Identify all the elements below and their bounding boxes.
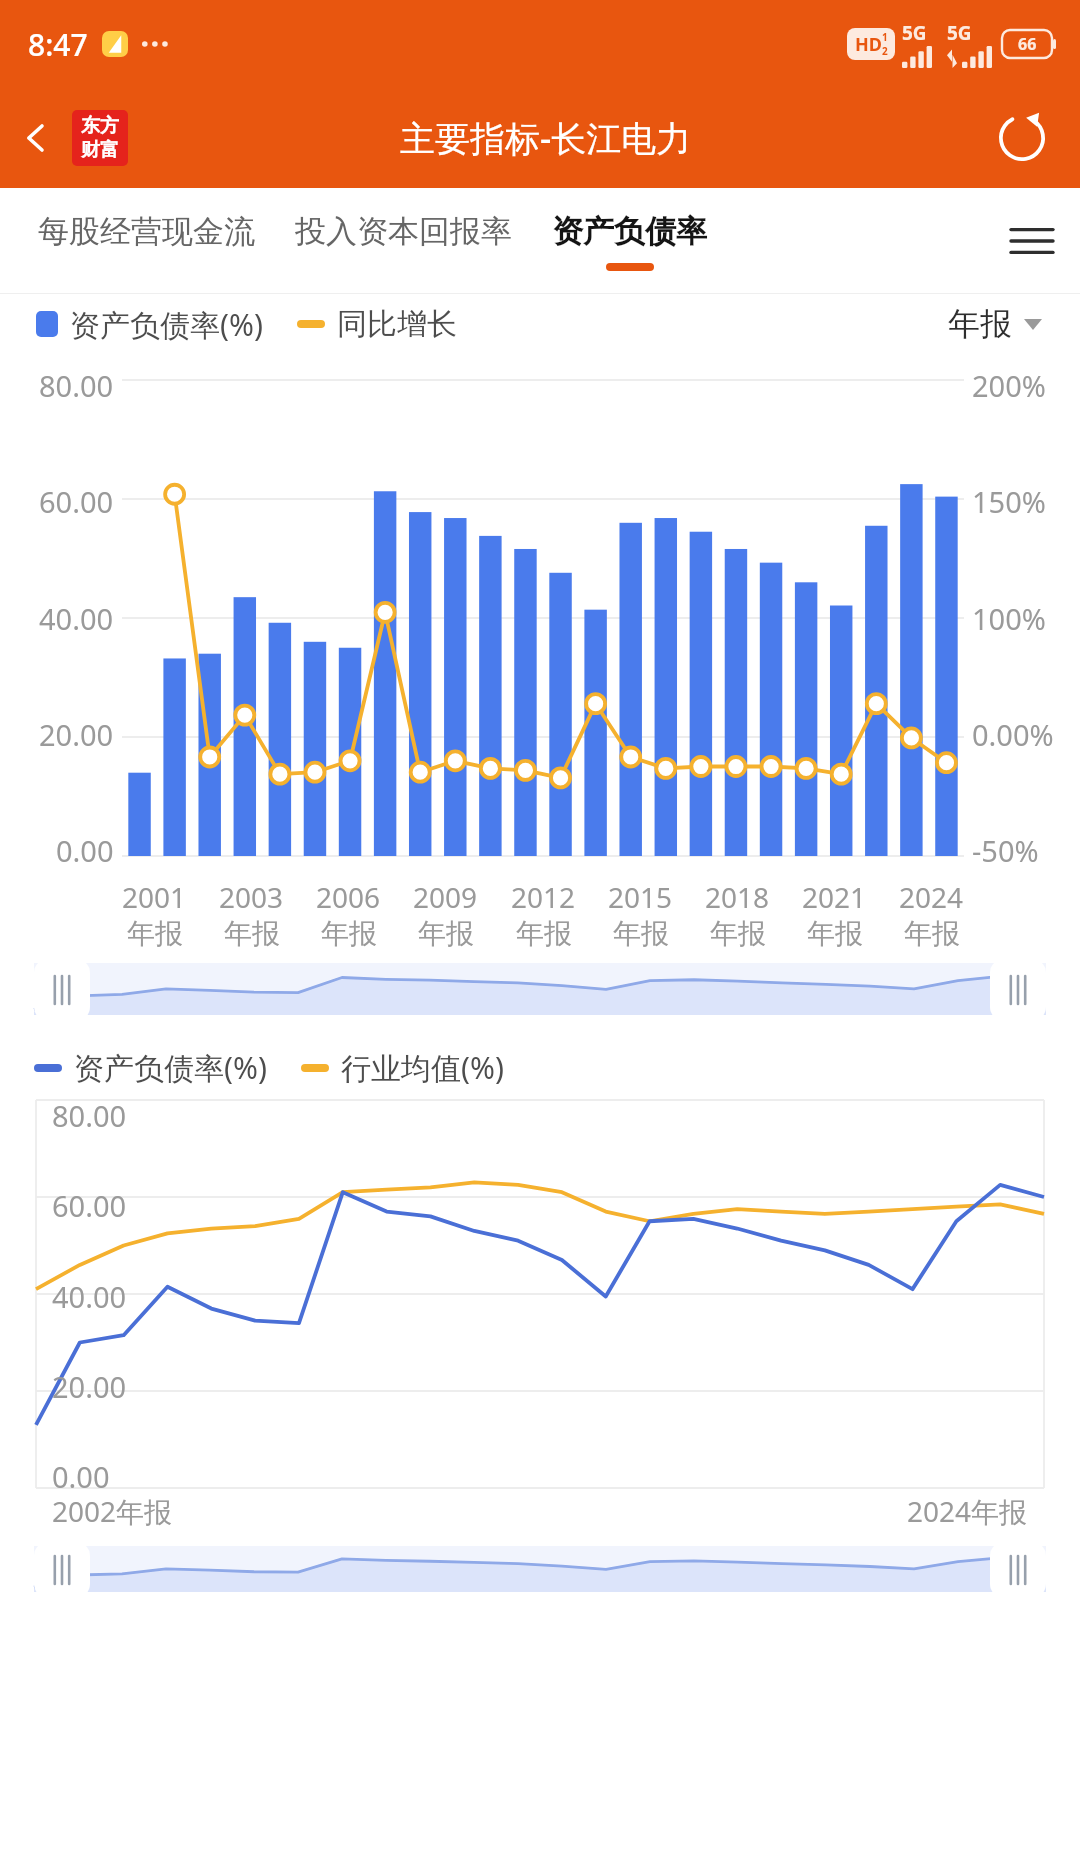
staticText: 年报 bbox=[516, 916, 572, 951]
staticText: 主要指标-长江电力 bbox=[400, 114, 692, 162]
staticText: HD bbox=[855, 32, 882, 57]
staticText: 80.00 bbox=[52, 1096, 127, 1135]
staticText: 5G bbox=[947, 20, 972, 46]
staticText: 1 bbox=[882, 30, 888, 44]
staticText: 150% bbox=[972, 482, 1046, 521]
button[interactable]: Refresh bbox=[964, 88, 1080, 188]
staticText: 东方 bbox=[81, 114, 119, 138]
staticText: 100% bbox=[972, 599, 1046, 638]
button[interactable]: Drag handle bbox=[990, 959, 1046, 1021]
staticText: 每股经营现金流 bbox=[38, 212, 255, 251]
staticText: 60.00 bbox=[52, 1186, 127, 1225]
staticText: 资产负债率(%) bbox=[74, 1047, 267, 1088]
staticText: 2003 bbox=[219, 878, 284, 916]
staticText: 0.00 bbox=[52, 1457, 110, 1496]
button[interactable]: Drag handle bbox=[34, 1542, 90, 1598]
staticText: 60.00 bbox=[39, 482, 114, 521]
staticText: 5G bbox=[902, 20, 927, 46]
staticText: 2002年报 bbox=[52, 1492, 173, 1530]
button[interactable]: 年报 bbox=[944, 300, 1046, 348]
staticText: -50% bbox=[972, 831, 1039, 870]
staticText: 资产负债率(%) bbox=[70, 304, 263, 345]
staticText: 年报 bbox=[904, 916, 960, 951]
staticText: 20.00 bbox=[39, 715, 114, 754]
button[interactable]: 资产负债率 bbox=[552, 208, 707, 275]
button[interactable]: Chart range slider bbox=[34, 959, 1046, 1021]
staticText: 200% bbox=[972, 366, 1046, 405]
button[interactable]: Drag handle bbox=[990, 1542, 1046, 1598]
staticText: 行业均值(%) bbox=[341, 1047, 504, 1088]
staticText: 40.00 bbox=[52, 1277, 127, 1316]
button[interactable]: 投入资本回报率 bbox=[295, 208, 512, 275]
staticText: 2 bbox=[882, 44, 888, 58]
staticText: 年报 bbox=[224, 916, 280, 951]
staticText: 年报 bbox=[418, 916, 474, 951]
staticText: 年报 bbox=[613, 916, 669, 951]
staticText: 财富 bbox=[81, 138, 119, 162]
staticText: 2021 bbox=[802, 878, 867, 916]
staticText: 2009 bbox=[413, 878, 478, 916]
staticText: 2015 bbox=[608, 878, 673, 916]
staticText: 8:47 bbox=[28, 24, 88, 65]
staticText: 同比增长 bbox=[337, 305, 457, 343]
staticText: 0.00% bbox=[972, 715, 1054, 754]
staticText: 年报 bbox=[127, 916, 183, 951]
staticText: 2006 bbox=[316, 878, 381, 916]
staticText: 66 bbox=[1018, 33, 1037, 55]
staticText: 2001 bbox=[122, 878, 187, 916]
staticText: 年报 bbox=[948, 304, 1012, 344]
staticText: 投入资本回报率 bbox=[295, 212, 512, 251]
staticText: 年报 bbox=[807, 916, 863, 951]
staticText: 40.00 bbox=[39, 599, 114, 638]
button[interactable]: Chart range slider bbox=[34, 1542, 1046, 1598]
staticText: 0.00 bbox=[56, 831, 114, 870]
button[interactable]: Back bbox=[0, 88, 72, 188]
button[interactable]: 每股经营现金流 bbox=[38, 208, 255, 275]
staticText: 年报 bbox=[710, 916, 766, 951]
staticText: 年报 bbox=[321, 916, 377, 951]
staticText: 2018 bbox=[705, 878, 770, 916]
button[interactable]: Menu bbox=[984, 188, 1080, 294]
button[interactable]: Drag handle bbox=[34, 959, 90, 1021]
button[interactable]: East Money bbox=[72, 110, 128, 166]
staticText: 2024 bbox=[899, 878, 964, 916]
staticText: 20.00 bbox=[52, 1367, 127, 1406]
staticText: 2024年报 bbox=[907, 1492, 1028, 1530]
staticText: 80.00 bbox=[39, 366, 114, 405]
staticText: 2012 bbox=[511, 878, 576, 916]
staticText: 资产负债率 bbox=[552, 212, 707, 251]
